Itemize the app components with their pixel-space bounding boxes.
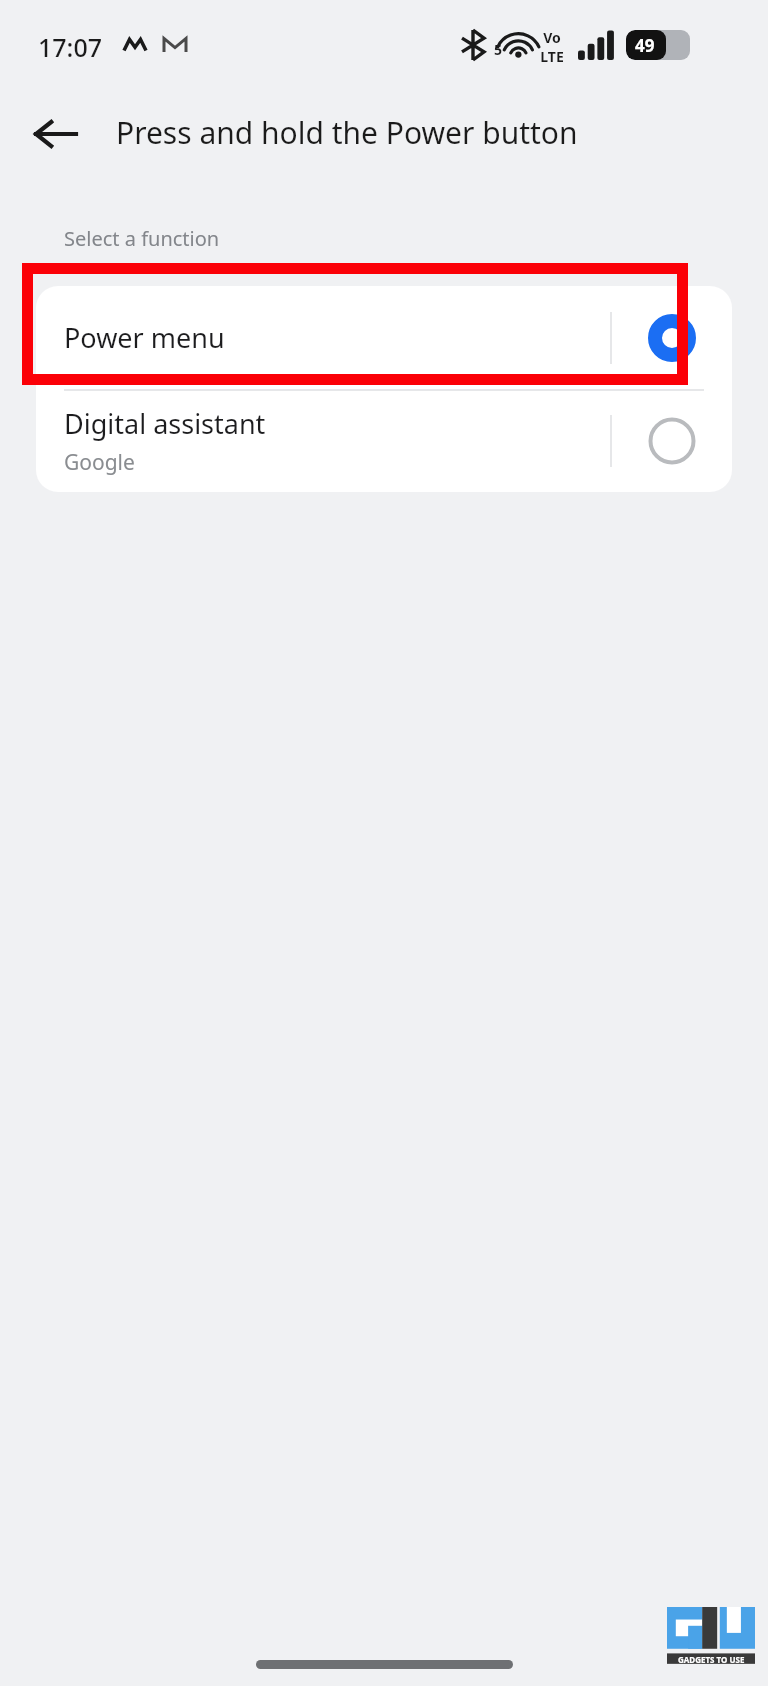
staticText: 49 (635, 34, 655, 57)
staticText: Power menu (64, 319, 610, 356)
button[interactable]: Digital assistant (36, 389, 732, 492)
staticText: Google (64, 448, 135, 477)
button[interactable]: Back (20, 98, 92, 170)
staticText: Digital assistant (64, 405, 266, 442)
staticText: Press and hold the Power button (116, 112, 578, 153)
staticText: Select a function (64, 225, 220, 252)
button[interactable]: Power menu (36, 286, 732, 389)
staticText: 17:07 (38, 30, 103, 64)
staticText: GADGETS TO USE (678, 1654, 745, 1665)
staticText: 5 (494, 40, 503, 59)
staticText: LTE (540, 47, 564, 66)
staticText: Vo (543, 28, 561, 47)
